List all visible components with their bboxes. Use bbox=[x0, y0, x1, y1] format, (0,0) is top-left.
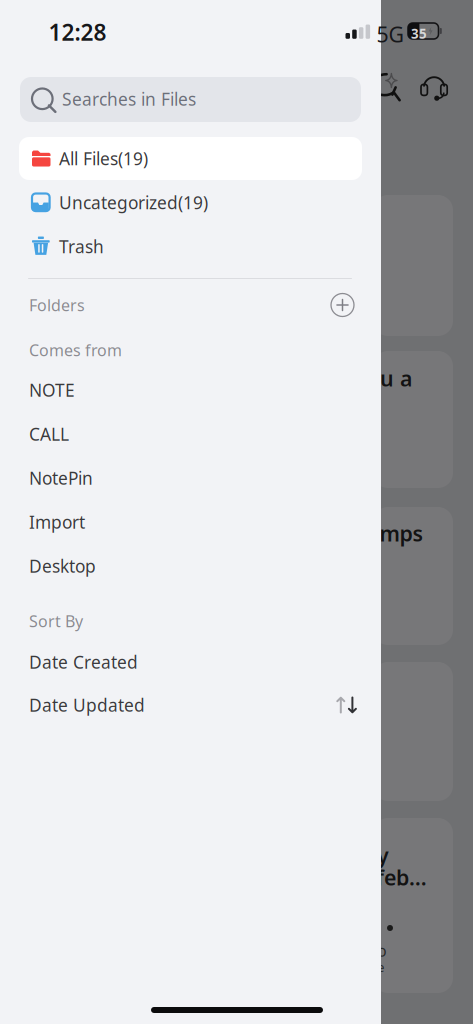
staticText: e bbox=[377, 958, 385, 976]
staticText: o bbox=[377, 940, 387, 961]
staticText: u a bbox=[380, 364, 412, 392]
button[interactable]: Date Created bbox=[19, 640, 362, 684]
staticText: NOTE bbox=[29, 378, 75, 401]
staticText: Import bbox=[29, 510, 85, 533]
staticText: 12:28 bbox=[48, 17, 106, 47]
button[interactable]: Uncategorized(19) bbox=[19, 181, 362, 224]
staticText: Trash bbox=[59, 235, 104, 258]
button[interactable]: Trash bbox=[19, 225, 362, 268]
staticText: Searches in Files bbox=[62, 87, 196, 110]
staticText: feb… bbox=[376, 863, 427, 891]
button[interactable]: NOTE bbox=[19, 368, 362, 412]
staticText: Folders bbox=[29, 294, 85, 316]
button[interactable]: NotePin bbox=[19, 456, 362, 500]
staticText: Date Updated bbox=[29, 693, 145, 716]
button[interactable]: Searches in Files bbox=[20, 77, 361, 122]
staticText: 35 bbox=[411, 25, 427, 42]
staticText: All Files(19) bbox=[59, 147, 148, 170]
staticText: Sort By bbox=[29, 610, 83, 632]
staticText: Date Created bbox=[29, 650, 138, 673]
staticText: CALL bbox=[29, 422, 69, 445]
button[interactable]: CALL bbox=[19, 412, 362, 456]
button[interactable]: Desktop bbox=[19, 544, 362, 588]
staticText: y bbox=[377, 841, 389, 869]
button[interactable]: Date Updated bbox=[19, 683, 362, 727]
staticText: Desktop bbox=[29, 554, 96, 577]
button[interactable]: Add folder bbox=[19, 285, 362, 325]
button[interactable]: Import bbox=[19, 500, 362, 544]
staticText: mps bbox=[379, 519, 423, 547]
staticText: Uncategorized(19) bbox=[59, 191, 208, 214]
button[interactable]: All Files(19) bbox=[19, 137, 362, 180]
staticText: 5G bbox=[376, 20, 404, 48]
staticText: NotePin bbox=[29, 466, 93, 489]
staticText: Comes from bbox=[29, 339, 122, 361]
